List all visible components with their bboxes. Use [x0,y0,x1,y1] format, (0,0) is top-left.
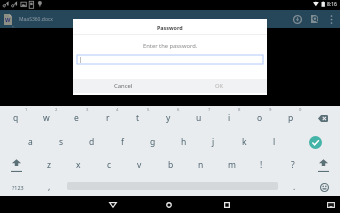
staticText: h [181,136,187,148]
button[interactable]: i [214,106,245,130]
staticText: g [150,136,156,148]
button[interactable]: u [183,106,214,130]
staticText: v [137,159,142,171]
staticText: 3 [86,107,89,113]
button[interactable]: Home [157,196,181,213]
staticText: 6 [177,107,180,113]
staticText: z [47,159,51,171]
staticText: w [43,112,50,124]
button[interactable]: b [155,153,186,177]
button[interactable]: y [153,106,184,130]
button[interactable]: ?123 [1,177,34,197]
button[interactable]: Enter [290,130,340,154]
staticText: i [228,112,231,124]
staticText: ?123 [12,184,24,191]
staticText: j [212,136,215,148]
button[interactable]: f [107,130,138,154]
staticText: r [106,112,110,124]
staticText: MaaS360.docx [19,16,53,23]
button[interactable]: p [275,106,306,130]
staticText: 1 [25,107,28,113]
button[interactable]: a [15,130,46,154]
button[interactable]: c [94,153,125,177]
staticText: OK [215,82,224,90]
staticText: W [5,16,11,24]
button[interactable]: Back [101,196,125,213]
button[interactable]: j [198,130,229,154]
button[interactable]: Recent apps [215,196,239,213]
staticText: a [28,136,33,148]
staticText: o [257,112,263,124]
staticText: 4 [116,107,119,113]
button[interactable]: h [168,130,199,154]
staticText: 5 [147,107,150,113]
button[interactable]: Find in document [306,10,323,28]
button[interactable]: Shift [0,153,33,177]
staticText: Enter the password. [143,42,198,50]
staticText: ! [260,159,263,171]
button[interactable]: k [229,130,260,154]
staticText: ? [291,159,295,171]
staticText: p [288,112,294,124]
button[interactable]: x [63,153,94,177]
staticText: . [293,181,296,193]
staticText: Password [157,24,183,31]
staticText: c [107,159,112,171]
button[interactable]: d [76,130,107,154]
button[interactable]: w [31,106,62,130]
button[interactable]: Shift [307,153,340,177]
button[interactable]: Download [289,10,306,28]
staticText: d [89,136,95,148]
staticText: 9 [269,107,272,113]
staticText: f [121,136,124,148]
staticText: , [48,181,51,193]
button[interactable]: . [279,177,310,197]
button[interactable]: ? [277,153,308,177]
button[interactable]: z [33,153,64,177]
staticText: e [74,112,79,124]
button[interactable]: q [0,106,31,130]
staticText: 0 [299,107,302,113]
staticText: 8:16 [327,1,337,8]
button[interactable]: More options [323,10,339,28]
button[interactable]: e [61,106,92,130]
button[interactable]: v [124,153,155,177]
button[interactable]: Switch keyboard [322,196,340,213]
staticText: n [198,159,204,171]
staticText: 2 [55,107,58,113]
button[interactable]: m [216,153,247,177]
staticText: b [168,159,174,171]
staticText: x [76,159,81,171]
button[interactable]: Emoji [307,177,340,197]
staticText: l [273,136,276,148]
button[interactable]: Cancel [95,79,151,93]
button[interactable]: , [34,177,65,197]
staticText: 7 [208,107,211,113]
staticText: u [196,112,202,124]
staticText: y [166,112,171,124]
button[interactable]: Backspace [305,106,340,130]
button[interactable]: g [137,130,168,154]
button[interactable]: OK [191,79,247,93]
button[interactable]: s [46,130,77,154]
staticText: s [59,136,64,148]
button[interactable]: ! [246,153,277,177]
staticText: Cancel [114,82,133,90]
button[interactable]: o [244,106,275,130]
button[interactable]: n [185,153,216,177]
button[interactable]: t [122,106,153,130]
staticText: 8 [238,107,241,113]
staticText: q [13,112,19,124]
staticText: t [136,112,140,124]
staticText: m [228,159,236,171]
button[interactable]: r [92,106,123,130]
staticText: k [242,136,247,148]
button[interactable]: l [259,130,290,154]
